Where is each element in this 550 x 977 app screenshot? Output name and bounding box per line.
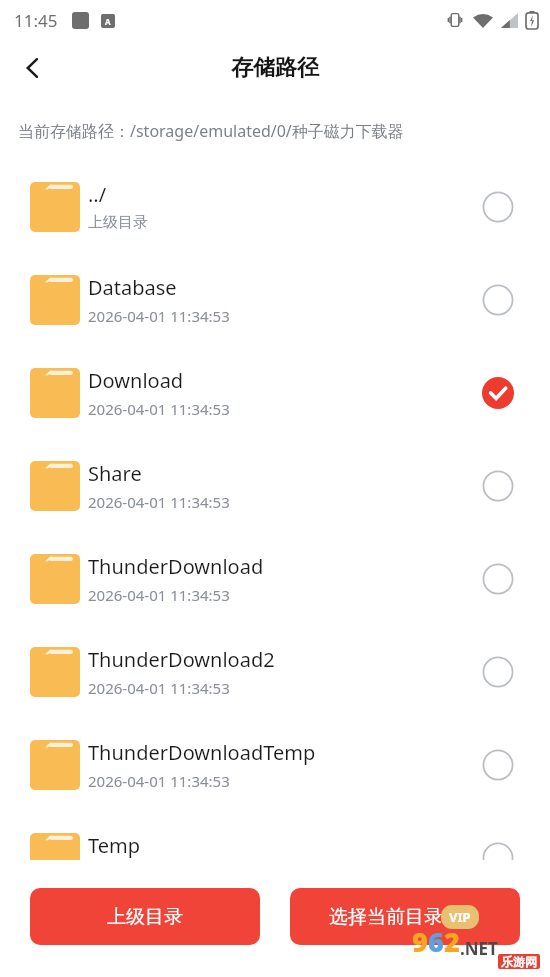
- staticText: 存储路径: [231, 54, 319, 82]
- button[interactable]: Select folder: [476, 743, 520, 787]
- button[interactable]: 上级目录: [30, 888, 260, 945]
- staticText: 2: [444, 923, 460, 960]
- button[interactable]: ThunderDownloadTemp: [0, 718, 550, 811]
- button[interactable]: Share: [0, 439, 550, 532]
- button[interactable]: ../: [0, 160, 550, 253]
- staticText: 2026-04-01 11:34:53: [88, 771, 230, 791]
- staticText: 2026-04-01 11:34:53: [88, 399, 230, 419]
- staticText: 9: [412, 923, 428, 960]
- button[interactable]: Select folder: [476, 836, 520, 880]
- staticText: 乐游网: [501, 954, 537, 969]
- staticText: 上级目录: [107, 905, 183, 929]
- button[interactable]: Temp: [0, 811, 550, 904]
- staticText: 选择当前目录: [329, 905, 443, 929]
- staticText: 11:45: [14, 9, 58, 32]
- staticText: A: [105, 16, 111, 27]
- staticText: ThunderDownloadTemp: [88, 739, 316, 766]
- button[interactable]: Select folder: [476, 278, 520, 322]
- staticText: 当前存储路径：/storage/emulated/0/种子磁力下载器: [18, 120, 404, 142]
- button[interactable]: Select folder: [476, 464, 520, 508]
- button[interactable]: Database: [0, 253, 550, 346]
- staticText: Download: [88, 367, 184, 394]
- staticText: 2026-04-01 11:34:53: [88, 678, 230, 698]
- staticText: 2026-04-01 11:34:53: [88, 492, 230, 512]
- button[interactable]: Download: [0, 346, 550, 439]
- staticText: VIP: [449, 908, 471, 926]
- staticText: 2026-04-01 11:34:53: [88, 585, 230, 605]
- staticText: Share: [88, 460, 142, 487]
- button[interactable]: Select folder: [476, 557, 520, 601]
- button[interactable]: Select folder: [476, 185, 520, 229]
- button[interactable]: Back: [10, 45, 56, 91]
- staticText: Temp: [88, 832, 140, 859]
- staticText: Database: [88, 274, 177, 301]
- staticText: ../: [88, 181, 107, 208]
- staticText: 6: [428, 923, 444, 960]
- button[interactable]: Selected: [476, 371, 520, 415]
- button[interactable]: Select folder: [476, 650, 520, 694]
- staticText: 上级目录: [88, 213, 148, 232]
- button[interactable]: 选择当前目录: [290, 888, 520, 945]
- staticText: ThunderDownload2: [88, 646, 275, 673]
- staticText: ThunderDownload: [88, 553, 264, 580]
- button[interactable]: ThunderDownload: [0, 532, 550, 625]
- staticText: 2026-04-01 11:34:53: [88, 306, 230, 326]
- staticText: .NET: [460, 937, 498, 960]
- button[interactable]: ThunderDownload2: [0, 625, 550, 718]
